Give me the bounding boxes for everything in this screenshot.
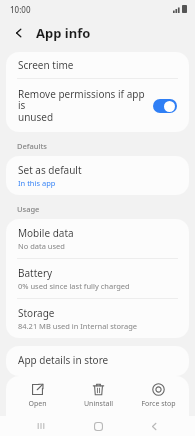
- staticText: App info: [36, 24, 91, 42]
- button[interactable]: Force stop: [129, 380, 187, 412]
- button[interactable]: Battery: [6, 259, 189, 298]
- button[interactable]: Recents: [26, 416, 56, 436]
- staticText: Force stop: [141, 399, 176, 409]
- button[interactable]: Mobile data: [6, 219, 189, 258]
- staticText: 10:00: [10, 4, 31, 15]
- staticText: Remove permissions if app is unused: [18, 87, 147, 124]
- button[interactable]: Open: [8, 380, 66, 412]
- staticText: 0% used since last fully charged: [18, 281, 130, 291]
- staticText: Storage: [18, 306, 55, 320]
- button[interactable]: Remove permissions if app is unused: [6, 79, 189, 132]
- button[interactable]: Uninstall: [69, 380, 127, 412]
- staticText: Screen time: [18, 58, 74, 72]
- button[interactable]: Home: [83, 416, 113, 436]
- button[interactable]: Back: [139, 416, 169, 436]
- button[interactable]: Back: [8, 22, 30, 44]
- button[interactable]: Screen time: [6, 52, 189, 78]
- staticText: Set as default: [18, 163, 82, 177]
- staticText: Defaults: [17, 141, 47, 151]
- button[interactable]: Storage: [6, 299, 189, 338]
- staticText: 84.21 MB used in Internal storage: [18, 321, 138, 331]
- staticText: App details in store: [18, 353, 109, 367]
- staticText: Open: [28, 399, 47, 409]
- staticText: In this app: [18, 178, 56, 188]
- staticText: Mobile data: [18, 226, 74, 240]
- staticText: Uninstall: [84, 399, 113, 409]
- staticText: Battery: [18, 266, 53, 280]
- button[interactable]: Set as default: [6, 156, 189, 195]
- staticText: Usage: [17, 204, 40, 214]
- staticText: No data used: [18, 241, 65, 251]
- button[interactable]: App details in store: [6, 346, 189, 376]
- other: Toggle on: [153, 99, 177, 113]
